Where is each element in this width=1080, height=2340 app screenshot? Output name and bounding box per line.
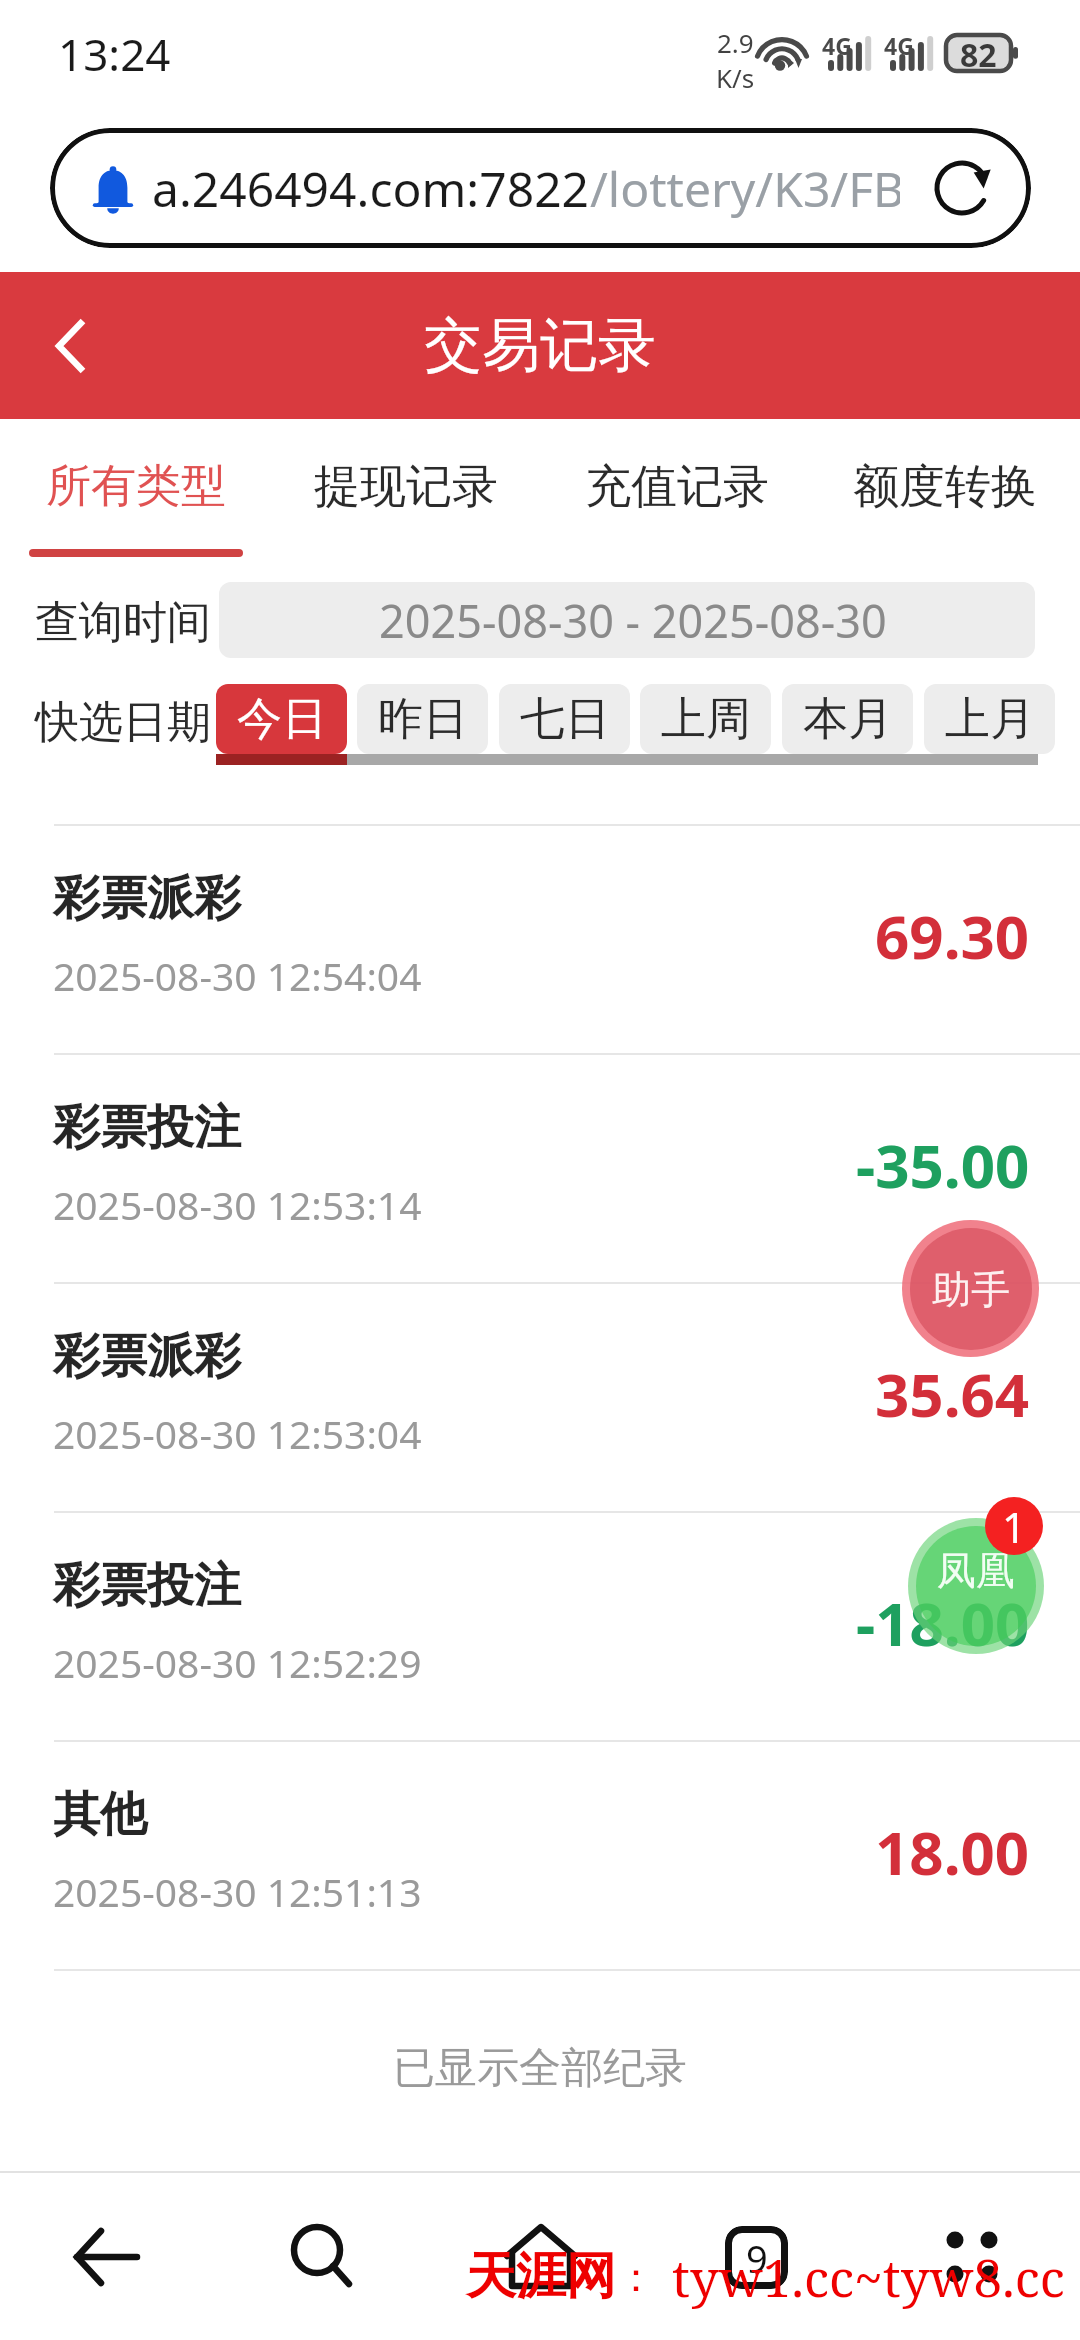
button[interactable]: a.246494.com:7822 <box>50 128 1031 248</box>
staticText: 交易记录 <box>424 309 656 382</box>
button[interactable]: 所有类型 <box>3 419 269 564</box>
staticText: ： <box>616 2252 656 2302</box>
button[interactable]: 昨日 <box>357 684 488 754</box>
staticText: 上周 <box>661 691 751 748</box>
button[interactable]: 其他 <box>0 1740 1080 1969</box>
staticText: tyw1.cc~tyw8.cc <box>672 2242 1065 2311</box>
button[interactable]: Back <box>0 2171 215 2340</box>
button[interactable]: 七日 <box>499 684 630 754</box>
button[interactable]: Back <box>25 272 116 419</box>
staticText: 2025-08-30 12:53:04 <box>53 1407 422 1460</box>
staticText: 彩票派彩 <box>53 869 241 928</box>
staticText: /lottery/K3/FB <box>590 156 900 221</box>
button[interactable]: Menu <box>864 2171 1080 2340</box>
staticText: 天涯网 <box>466 2245 616 2308</box>
button[interactable]: 彩票派彩 <box>0 824 1080 1053</box>
staticText: -18.00 <box>856 1582 1030 1664</box>
staticText: K/s <box>716 60 755 95</box>
staticText: 其他 <box>53 1785 147 1844</box>
button[interactable]: 2025-08-30 - 2025-08-30 <box>219 582 1035 658</box>
staticText: 快选日期 <box>35 695 211 750</box>
staticText: 2.9 <box>717 25 754 60</box>
staticText: 9 <box>746 2232 768 2284</box>
button[interactable]: 彩票投注 <box>0 1053 1080 1282</box>
button[interactable]: 今日 <box>216 684 347 754</box>
button[interactable]: Tabs <box>648 2171 864 2340</box>
staticText: 上月 <box>945 691 1035 748</box>
staticText: 2025-08-30 12:54:04 <box>53 949 422 1002</box>
staticText: 2025-08-30 - 2025-08-30 <box>379 590 887 651</box>
staticText: 提现记录 <box>314 458 498 516</box>
staticText: 凤凰 <box>937 1546 1015 1595</box>
staticText: 所有类型 <box>46 458 226 515</box>
staticText: 查询时间 <box>35 595 211 650</box>
staticText: 七日 <box>520 691 610 748</box>
button[interactable]: 彩票派彩 <box>0 1282 1080 1511</box>
button[interactable]: Reload <box>912 128 1012 248</box>
staticText: 充值记录 <box>585 458 769 516</box>
staticText: 4G <box>884 30 914 61</box>
staticText: 助手 <box>932 1265 1010 1314</box>
staticText: 18.00 <box>875 1811 1030 1893</box>
staticText: 2025-08-30 12:53:14 <box>53 1178 422 1231</box>
staticText: 昨日 <box>378 691 468 748</box>
staticText: 彩票投注 <box>53 1556 241 1615</box>
staticText: 1 <box>1002 1498 1027 1555</box>
button[interactable]: 助手 <box>902 1220 1039 1357</box>
staticText: 2025-08-30 12:51:13 <box>53 1865 422 1918</box>
staticText: 35.64 <box>875 1353 1030 1435</box>
staticText: 今日 <box>237 691 327 748</box>
button[interactable]: 本月 <box>782 684 913 754</box>
staticText: -35.00 <box>856 1124 1030 1206</box>
staticText: 已显示全部纪录 <box>0 2042 1080 2095</box>
button[interactable]: 凤凰 <box>908 1518 1044 1654</box>
staticText: 13:24 <box>58 24 171 84</box>
staticText: 彩票派彩 <box>53 1327 241 1386</box>
button[interactable]: 额度转换 <box>812 419 1078 564</box>
staticText: a.246494.com:7822 <box>152 156 590 221</box>
button[interactable]: 充值记录 <box>544 419 810 564</box>
button[interactable]: Home <box>433 2171 649 2340</box>
staticText: 4G <box>822 30 852 61</box>
staticText: 82 <box>960 33 997 77</box>
button[interactable]: 彩票投注 <box>0 1511 1080 1740</box>
staticText: 2025-08-30 12:52:29 <box>53 1636 422 1689</box>
staticText: 本月 <box>803 691 893 748</box>
button[interactable]: 提现记录 <box>273 419 539 564</box>
staticText: 69.30 <box>875 895 1030 977</box>
button[interactable]: 上周 <box>640 684 771 754</box>
button[interactable]: Search <box>214 2171 430 2340</box>
staticText: 彩票投注 <box>53 1098 241 1157</box>
button[interactable]: 上月 <box>924 684 1055 754</box>
staticText: 额度转换 <box>853 458 1037 516</box>
